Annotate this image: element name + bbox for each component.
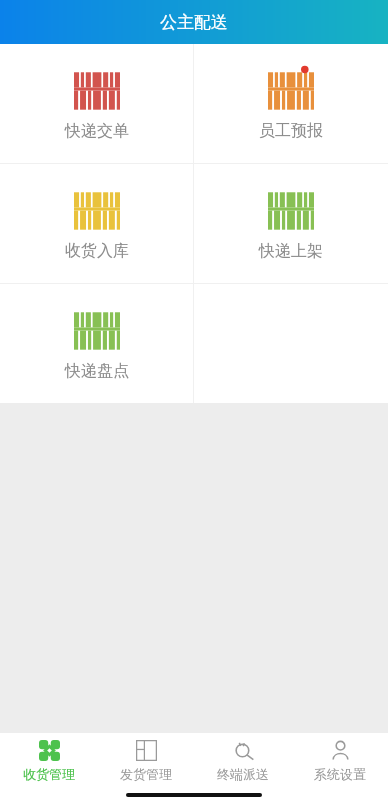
staticText: 收货入库 <box>65 241 129 261</box>
staticText: 发货管理 <box>120 766 172 782</box>
staticText: 快递盘点 <box>65 361 129 381</box>
button[interactable]: 系统设置 <box>291 733 388 789</box>
button[interactable]: 快递交单 <box>0 44 193 163</box>
button[interactable]: 终端派送 <box>194 733 291 789</box>
staticText: 收货管理 <box>23 766 75 782</box>
staticText: 快递上架 <box>259 241 323 261</box>
button[interactable]: 快递上架 <box>194 164 388 283</box>
button[interactable]: 员工预报 <box>194 44 388 163</box>
staticText: 员工预报 <box>259 121 323 141</box>
button[interactable]: 发货管理 <box>97 733 194 789</box>
button[interactable]: 收货入库 <box>0 164 193 283</box>
staticText: 公主配送 <box>160 12 228 33</box>
staticText: 系统设置 <box>314 766 366 782</box>
staticText: 终端派送 <box>217 766 269 782</box>
button[interactable]: 快递盘点 <box>0 284 193 403</box>
button[interactable]: 收货管理 <box>0 733 97 789</box>
staticText: 快递交单 <box>65 121 129 141</box>
